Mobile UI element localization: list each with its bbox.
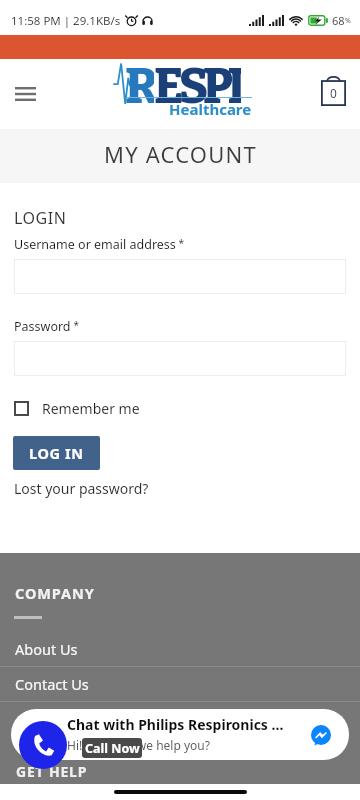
button[interactable]: LOG IN [13,436,100,470]
button[interactable]: Cart [313,70,353,110]
staticText: R [125,57,154,115]
staticText: COMPANY [15,583,95,603]
staticText: * [176,236,185,250]
button[interactable]: Call Now [19,721,67,769]
staticText: Lost your password? [14,479,149,498]
staticText: * [71,318,80,332]
staticText: GET HELP [16,762,88,781]
staticText: Call Now [85,740,140,757]
button[interactable]: Remember me [14,399,140,418]
button[interactable]: Chat with Philips Respironics ... [11,709,349,760]
staticText: 11:58 PM | 29.1KB/s [11,13,121,29]
staticText: 0 [330,85,337,101]
staticText: Username or email address [14,236,176,253]
staticText: Healthcare [169,99,252,119]
button[interactable] [14,341,346,376]
staticText: % [345,16,351,26]
button[interactable]: Lost your password? [14,479,149,498]
staticText: LOG IN [29,443,84,463]
staticText: Remember me [42,399,140,418]
button[interactable]: Contact Us [0,667,360,701]
staticText: Contact Us [15,674,89,694]
staticText: 68 [332,13,345,28]
button[interactable]: About Us [0,632,360,666]
staticText: ESPI [154,57,241,115]
staticText: Chat with Philips Respironics ... [67,715,284,734]
staticText: LOGIN [14,207,67,229]
button[interactable]: Open Messenger [311,725,331,745]
button[interactable]: Menu [4,73,46,115]
staticText: Hi! How can we help you? [67,737,210,753]
button[interactable] [14,259,346,294]
staticText: About Us [15,639,78,659]
staticText: Password [14,318,71,335]
staticText: MY ACCOUNT [104,139,257,169]
